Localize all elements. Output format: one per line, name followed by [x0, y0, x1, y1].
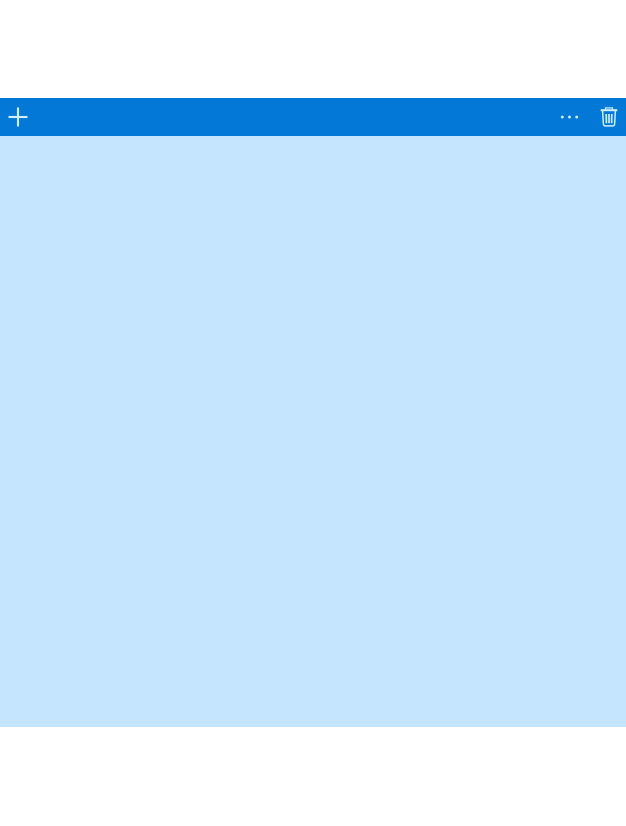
- button[interactable]: Add: [0, 98, 36, 136]
- button[interactable]: Delete: [592, 98, 626, 136]
- button[interactable]: More options: [547, 98, 592, 136]
